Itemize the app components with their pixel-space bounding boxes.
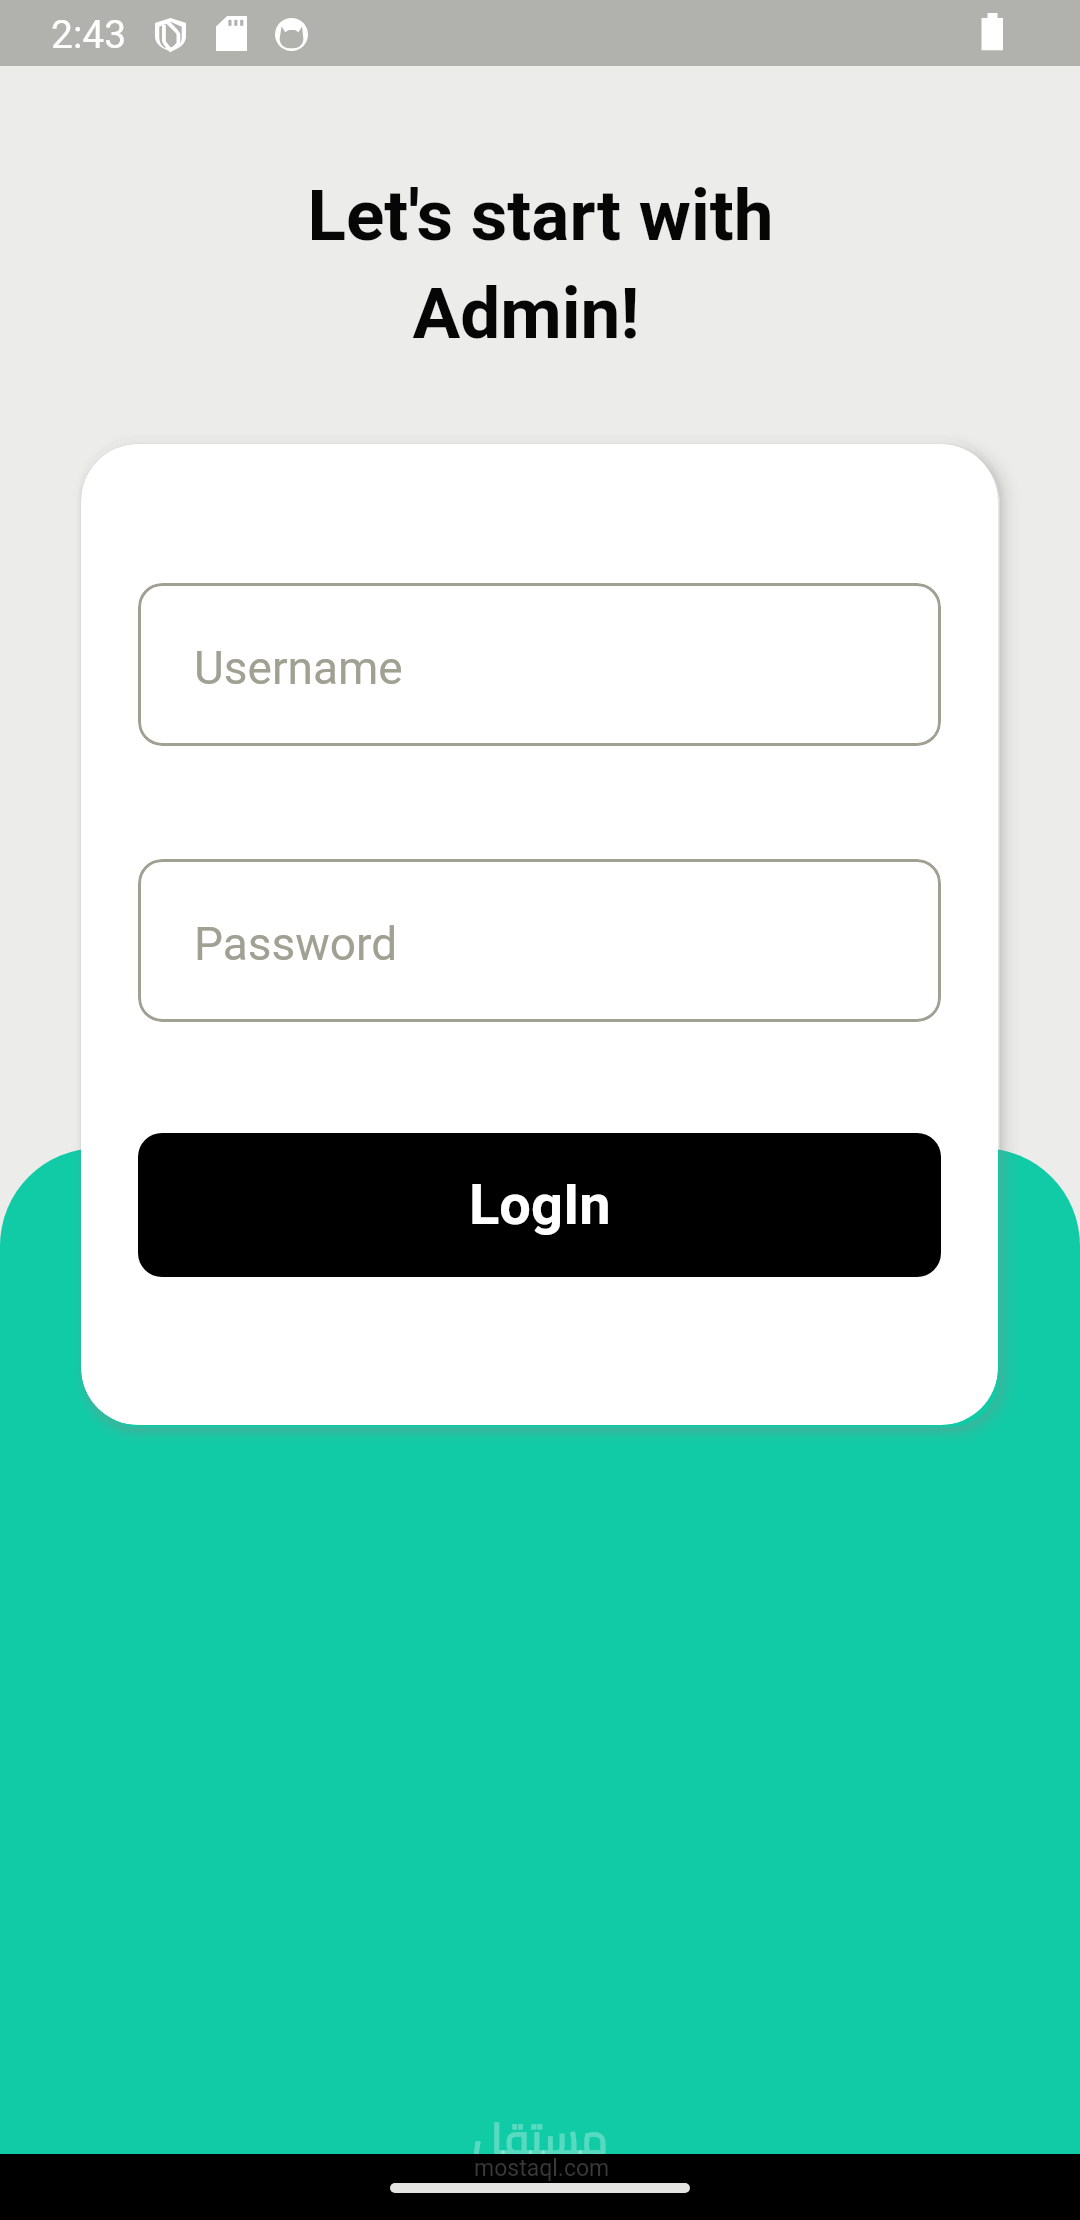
staticText: Password bbox=[194, 917, 398, 971]
staticText: Admin! bbox=[412, 272, 640, 355]
staticText: Let's start with bbox=[307, 174, 774, 257]
staticText: Username bbox=[194, 641, 403, 695]
staticText: LogIn bbox=[469, 1172, 611, 1238]
other: Account bbox=[275, 18, 308, 51]
button[interactable]: LogIn bbox=[138, 1133, 941, 1277]
staticText: مستقل bbox=[473, 2098, 608, 2179]
button[interactable]: Username bbox=[138, 583, 941, 746]
button[interactable]: Password bbox=[138, 859, 941, 1022]
button[interactable]: Home bbox=[390, 2183, 690, 2193]
staticText: 2:43 bbox=[51, 12, 127, 58]
other: Battery bbox=[980, 13, 1005, 51]
staticText: mostaql.com bbox=[474, 2155, 610, 2182]
other: Protected bbox=[154, 17, 187, 52]
other: SD card bbox=[216, 16, 247, 51]
